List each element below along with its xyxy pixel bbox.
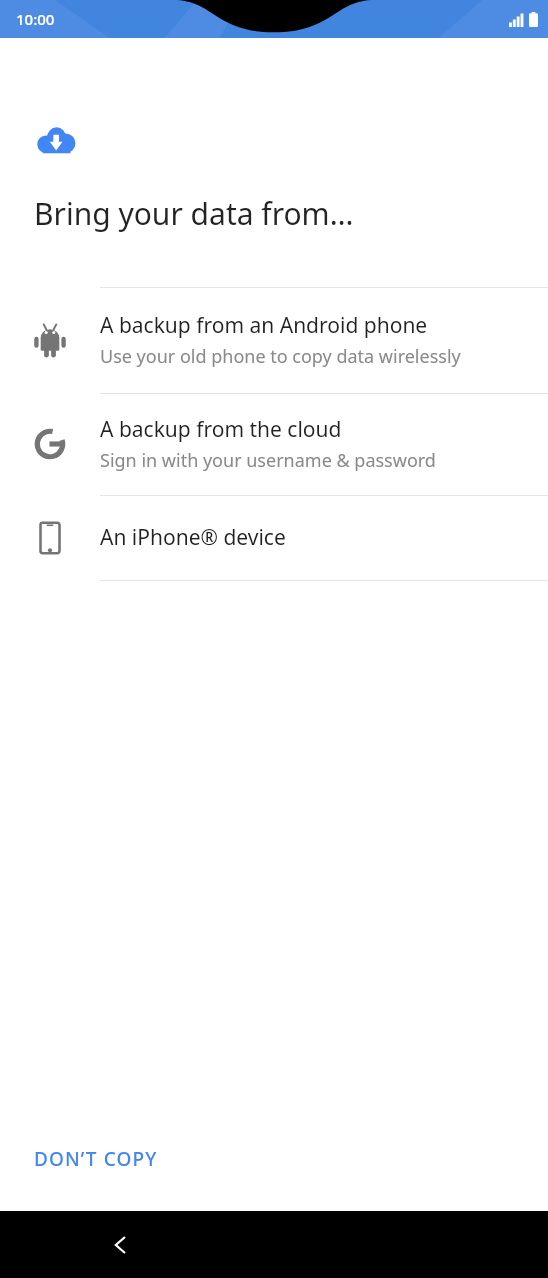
button[interactable]: Back bbox=[95, 1220, 145, 1270]
staticText: A backup from an Android phone bbox=[100, 311, 428, 340]
button[interactable]: DON’T COPY bbox=[18, 1136, 174, 1182]
button[interactable]: A backup from an Android phone bbox=[0, 287, 548, 393]
staticText: Sign in with your username & password bbox=[100, 448, 436, 473]
staticText: Bring your data from… bbox=[34, 193, 354, 234]
button[interactable]: An iPhone® device bbox=[0, 495, 548, 580]
staticText: Use your old phone to copy data wireless… bbox=[100, 344, 461, 369]
staticText: A backup from the cloud bbox=[100, 415, 342, 444]
staticText: An iPhone® device bbox=[100, 523, 286, 552]
button[interactable]: A backup from the cloud bbox=[0, 393, 548, 495]
staticText: DON’T COPY bbox=[34, 1146, 158, 1172]
staticText: 10:00 bbox=[16, 9, 55, 29]
